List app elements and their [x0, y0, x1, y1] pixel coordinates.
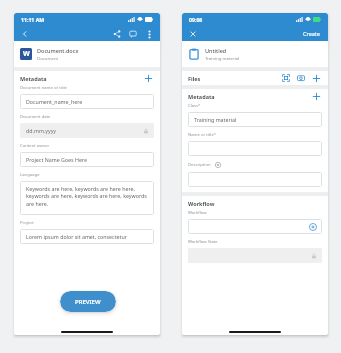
button[interactable]: Add workflow	[188, 219, 322, 234]
staticText: PREVIEW	[75, 298, 101, 306]
staticText: Name or title*	[188, 132, 217, 138]
staticText: Workflow State	[188, 239, 218, 245]
staticText: Create	[303, 30, 320, 37]
button[interactable]	[188, 172, 322, 187]
button[interactable]: Document_name_here	[20, 94, 154, 109]
staticText: Document.docx	[37, 47, 79, 54]
staticText: Training material	[205, 55, 240, 61]
button[interactable]: Scan	[280, 72, 292, 84]
button[interactable]: Description info	[214, 161, 222, 169]
staticText: Workflow	[188, 200, 215, 207]
button[interactable]: Close	[187, 28, 199, 40]
button[interactable]: Create	[300, 28, 323, 39]
button[interactable]: Keywords are here, keywords are here her…	[20, 181, 154, 215]
button[interactable]: W	[20, 41, 154, 67]
button[interactable]: Back	[19, 28, 31, 40]
button[interactable]: PREVIEW	[60, 291, 116, 312]
button[interactable]	[188, 141, 322, 156]
staticText: Description	[188, 162, 211, 168]
staticText: Content owner	[20, 143, 50, 149]
staticText: Document	[37, 55, 59, 61]
staticText: Document_name_here	[26, 98, 83, 105]
staticText: Lorem ipsum dolor sit amet, consectetur	[26, 233, 127, 240]
staticText: Project Name Goes Here	[26, 156, 87, 163]
staticText: Project	[20, 220, 34, 226]
button[interactable]: Comments	[127, 28, 139, 40]
staticText: Metadata	[188, 93, 215, 100]
button[interactable]: Add workflow	[308, 222, 318, 232]
button[interactable]: Lorem ipsum dolor sit amet, consectetur	[20, 229, 154, 244]
button[interactable]: Project Name Goes Here	[20, 152, 154, 167]
staticText: Untitled	[205, 47, 227, 54]
staticText: 09:06	[189, 16, 203, 23]
staticText: Document name or title	[20, 85, 67, 91]
staticText: Metadata	[20, 75, 47, 82]
button[interactable]: Add file	[310, 72, 322, 84]
button[interactable]: Untitled	[188, 41, 322, 67]
staticText: Training material	[194, 116, 237, 123]
staticText: dd.mm.yyyy	[26, 127, 57, 134]
button[interactable]: Share	[111, 28, 123, 40]
staticText: Language	[20, 172, 40, 178]
staticText: Class*	[188, 103, 201, 109]
button[interactable]: More options	[143, 28, 155, 40]
button[interactable]: Camera	[295, 72, 307, 84]
button[interactable]: Training material	[188, 112, 322, 127]
button[interactable]: dd.mm.yyyy	[20, 123, 154, 138]
staticText: Workflow	[188, 210, 207, 216]
staticText: 11:11 AM	[21, 16, 45, 23]
button[interactable]: Add metadata	[310, 90, 322, 102]
staticText: Keywords are here, keywords are here her…	[26, 185, 150, 208]
staticText: Files	[188, 75, 201, 82]
staticText: Document date	[20, 114, 51, 120]
button[interactable]: Add metadata	[142, 72, 154, 84]
staticText: W	[23, 49, 30, 59]
